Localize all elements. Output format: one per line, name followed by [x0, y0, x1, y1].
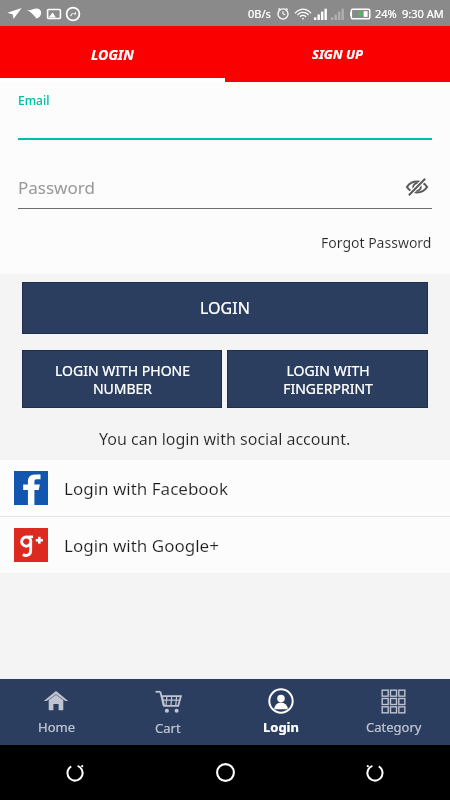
staticText: SIGN UP — [312, 45, 363, 63]
staticText: 24% — [375, 6, 397, 21]
staticText: Password — [18, 176, 402, 199]
button[interactable]: Login with Facebook — [0, 460, 450, 516]
button[interactable]: LOGIN — [0, 26, 225, 82]
staticText: Cart — [155, 719, 181, 737]
button[interactable]: Recents — [0, 745, 150, 800]
button[interactable]: SIGN UP — [225, 26, 450, 82]
button[interactable]: Back — [300, 745, 450, 800]
staticText: LOGIN WITH PHONE NUMBER — [55, 361, 190, 398]
staticText: LOGIN WITH FINGERPRINT — [283, 361, 373, 398]
staticText: Category — [366, 718, 422, 736]
button[interactable]: Login — [224, 679, 337, 745]
button[interactable]: Forgot Password — [303, 229, 450, 256]
staticText: Email — [18, 92, 50, 108]
button[interactable]: Home — [0, 679, 112, 745]
button[interactable]: LOGIN — [23, 283, 427, 333]
staticText: Home — [38, 718, 75, 736]
staticText: 9:30 AM — [402, 6, 444, 21]
button[interactable]: Cart — [112, 679, 224, 745]
staticText: You can login with social account. — [99, 428, 351, 450]
staticText: LOGIN — [200, 297, 250, 319]
button[interactable]: LOGIN WITH FINGERPRINT — [228, 351, 427, 407]
button[interactable]: Show password — [402, 172, 432, 202]
button[interactable]: Category — [337, 679, 450, 745]
button[interactable]: Home — [150, 745, 300, 800]
button[interactable]: LOGIN WITH PHONE NUMBER — [23, 351, 221, 407]
staticText: Login with Facebook — [64, 477, 228, 500]
staticText: Login with Google+ — [64, 534, 219, 557]
staticText: Login — [263, 718, 299, 736]
button[interactable]: Login with Google+ — [0, 517, 450, 573]
staticText: LOGIN — [91, 45, 134, 64]
staticText: 0B/s — [248, 6, 271, 21]
